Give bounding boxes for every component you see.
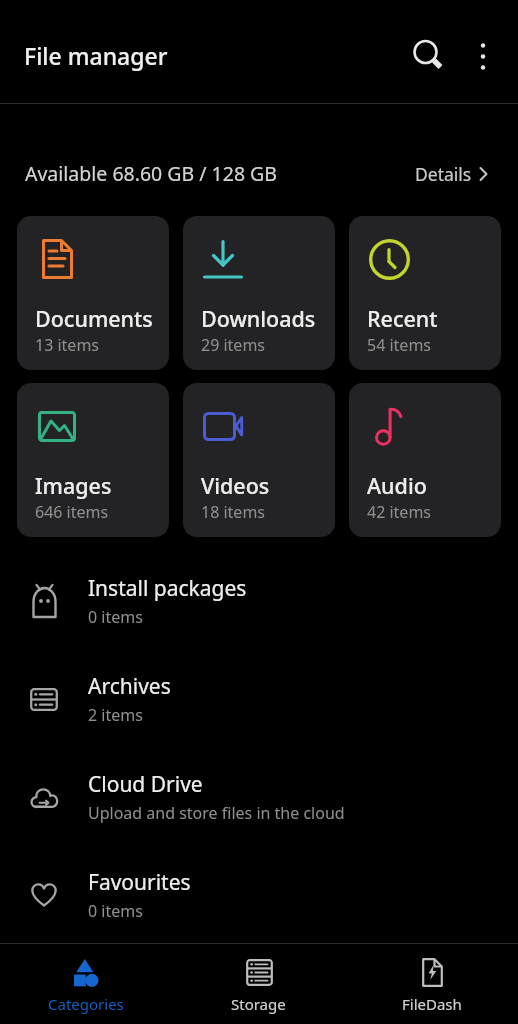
staticText: 29 items — [201, 334, 266, 356]
button[interactable]: Cloud Drive — [0, 748, 518, 846]
staticText: File manager — [24, 40, 168, 71]
button[interactable]: FileDash — [345, 944, 518, 1024]
button[interactable]: Favourites — [0, 846, 518, 944]
staticText: Recent — [367, 304, 438, 333]
button[interactable]: Downloads — [183, 216, 335, 370]
button[interactable]: Available 68.60 GB / 128 GB — [25, 160, 488, 187]
button[interactable]: Recent — [349, 216, 501, 370]
staticText: 18 items — [201, 501, 266, 523]
staticText: Storage — [231, 994, 286, 1014]
staticText: 13 items — [35, 334, 100, 356]
staticText: 0 items — [88, 606, 143, 628]
staticText: 0 items — [88, 900, 143, 922]
staticText: Audio — [367, 471, 427, 500]
button[interactable]: Categories — [0, 944, 172, 1024]
staticText: Available 68.60 GB / 128 GB — [25, 160, 277, 187]
staticText: Documents — [35, 304, 153, 333]
button[interactable]: Images — [17, 383, 169, 537]
staticText: FileDash — [402, 994, 462, 1014]
staticText: 42 items — [367, 501, 432, 523]
staticText: Favourites — [88, 868, 191, 897]
staticText: Downloads — [201, 304, 316, 333]
button[interactable]: Documents — [17, 216, 169, 370]
staticText: 2 items — [88, 704, 143, 726]
button[interactable]: Install packages — [0, 552, 518, 650]
staticText: Images — [35, 471, 112, 500]
staticText: Details — [415, 162, 472, 186]
staticText: Install packages — [88, 574, 247, 603]
button[interactable] — [473, 39, 493, 73]
staticText: Archives — [88, 672, 171, 701]
staticText: Categories — [48, 994, 124, 1014]
staticText: 54 items — [367, 334, 432, 356]
button[interactable]: Audio — [349, 383, 501, 537]
staticText: Cloud Drive — [88, 770, 203, 799]
button[interactable] — [413, 39, 447, 73]
button[interactable]: Videos — [183, 383, 335, 537]
staticText: 646 items — [35, 501, 109, 523]
button[interactable]: Archives — [0, 650, 518, 748]
staticText: Videos — [201, 471, 270, 500]
button[interactable]: Storage — [172, 944, 345, 1024]
staticText: Upload and store files in the cloud — [88, 802, 345, 824]
